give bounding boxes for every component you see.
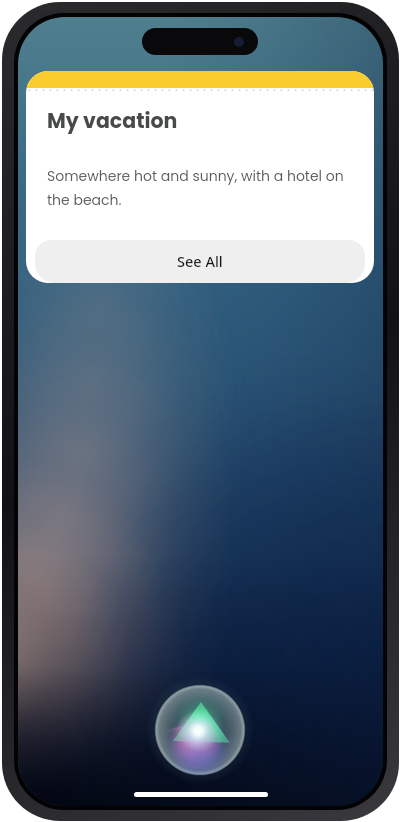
button[interactable]: See All — [35, 240, 365, 283]
staticText: See All — [177, 251, 223, 271]
other: Dynamic Island — [142, 28, 258, 55]
button[interactable]: Siri — [146, 676, 254, 784]
staticText: Somewhere hot and sunny, with a hotel on… — [47, 166, 361, 209]
staticText: My vacation — [47, 106, 178, 135]
